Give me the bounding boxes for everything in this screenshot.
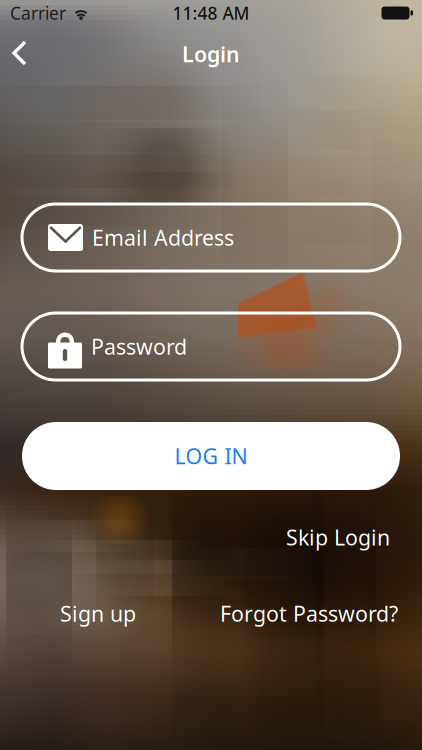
button[interactable]: Back <box>0 31 45 75</box>
staticText: Sign up <box>60 599 136 628</box>
staticText: Password <box>91 332 187 361</box>
button[interactable]: Forgot Password? <box>220 599 398 628</box>
button[interactable]: Sign up <box>60 599 136 628</box>
button[interactable]: Password <box>22 313 400 380</box>
staticText: 11:48 AM <box>172 1 249 24</box>
button[interactable]: LOG IN <box>22 422 400 490</box>
button[interactable]: Skip Login <box>286 523 390 551</box>
staticText: Skip Login <box>286 523 390 551</box>
staticText: Email Address <box>92 223 234 252</box>
staticText: LOG IN <box>174 442 247 470</box>
staticText: Carrier <box>10 1 66 24</box>
staticText: Login <box>182 40 240 68</box>
button[interactable]: Email Address <box>22 204 400 271</box>
staticText: Forgot Password? <box>220 599 398 628</box>
